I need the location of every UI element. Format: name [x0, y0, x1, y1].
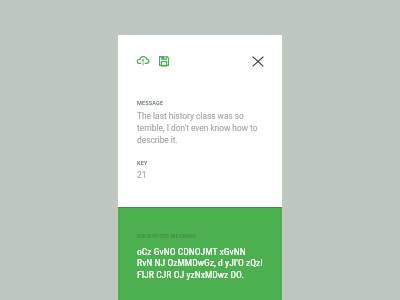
staticText: MESSAGE — [137, 100, 164, 107]
staticText: The last history class was so terrible, … — [137, 111, 258, 145]
staticText: ENCRYPTED MEANING — [137, 233, 197, 240]
staticText: 21 — [137, 170, 147, 180]
button[interactable]: Upload to cloud — [135, 53, 151, 69]
staticText: KEY — [137, 160, 148, 167]
button[interactable]: Close — [250, 53, 266, 69]
button[interactable]: Save — [156, 53, 172, 69]
staticText: oCz GvNO CDNOJMT xGvNN RvN NJ OzMMDwGz, … — [137, 246, 263, 281]
